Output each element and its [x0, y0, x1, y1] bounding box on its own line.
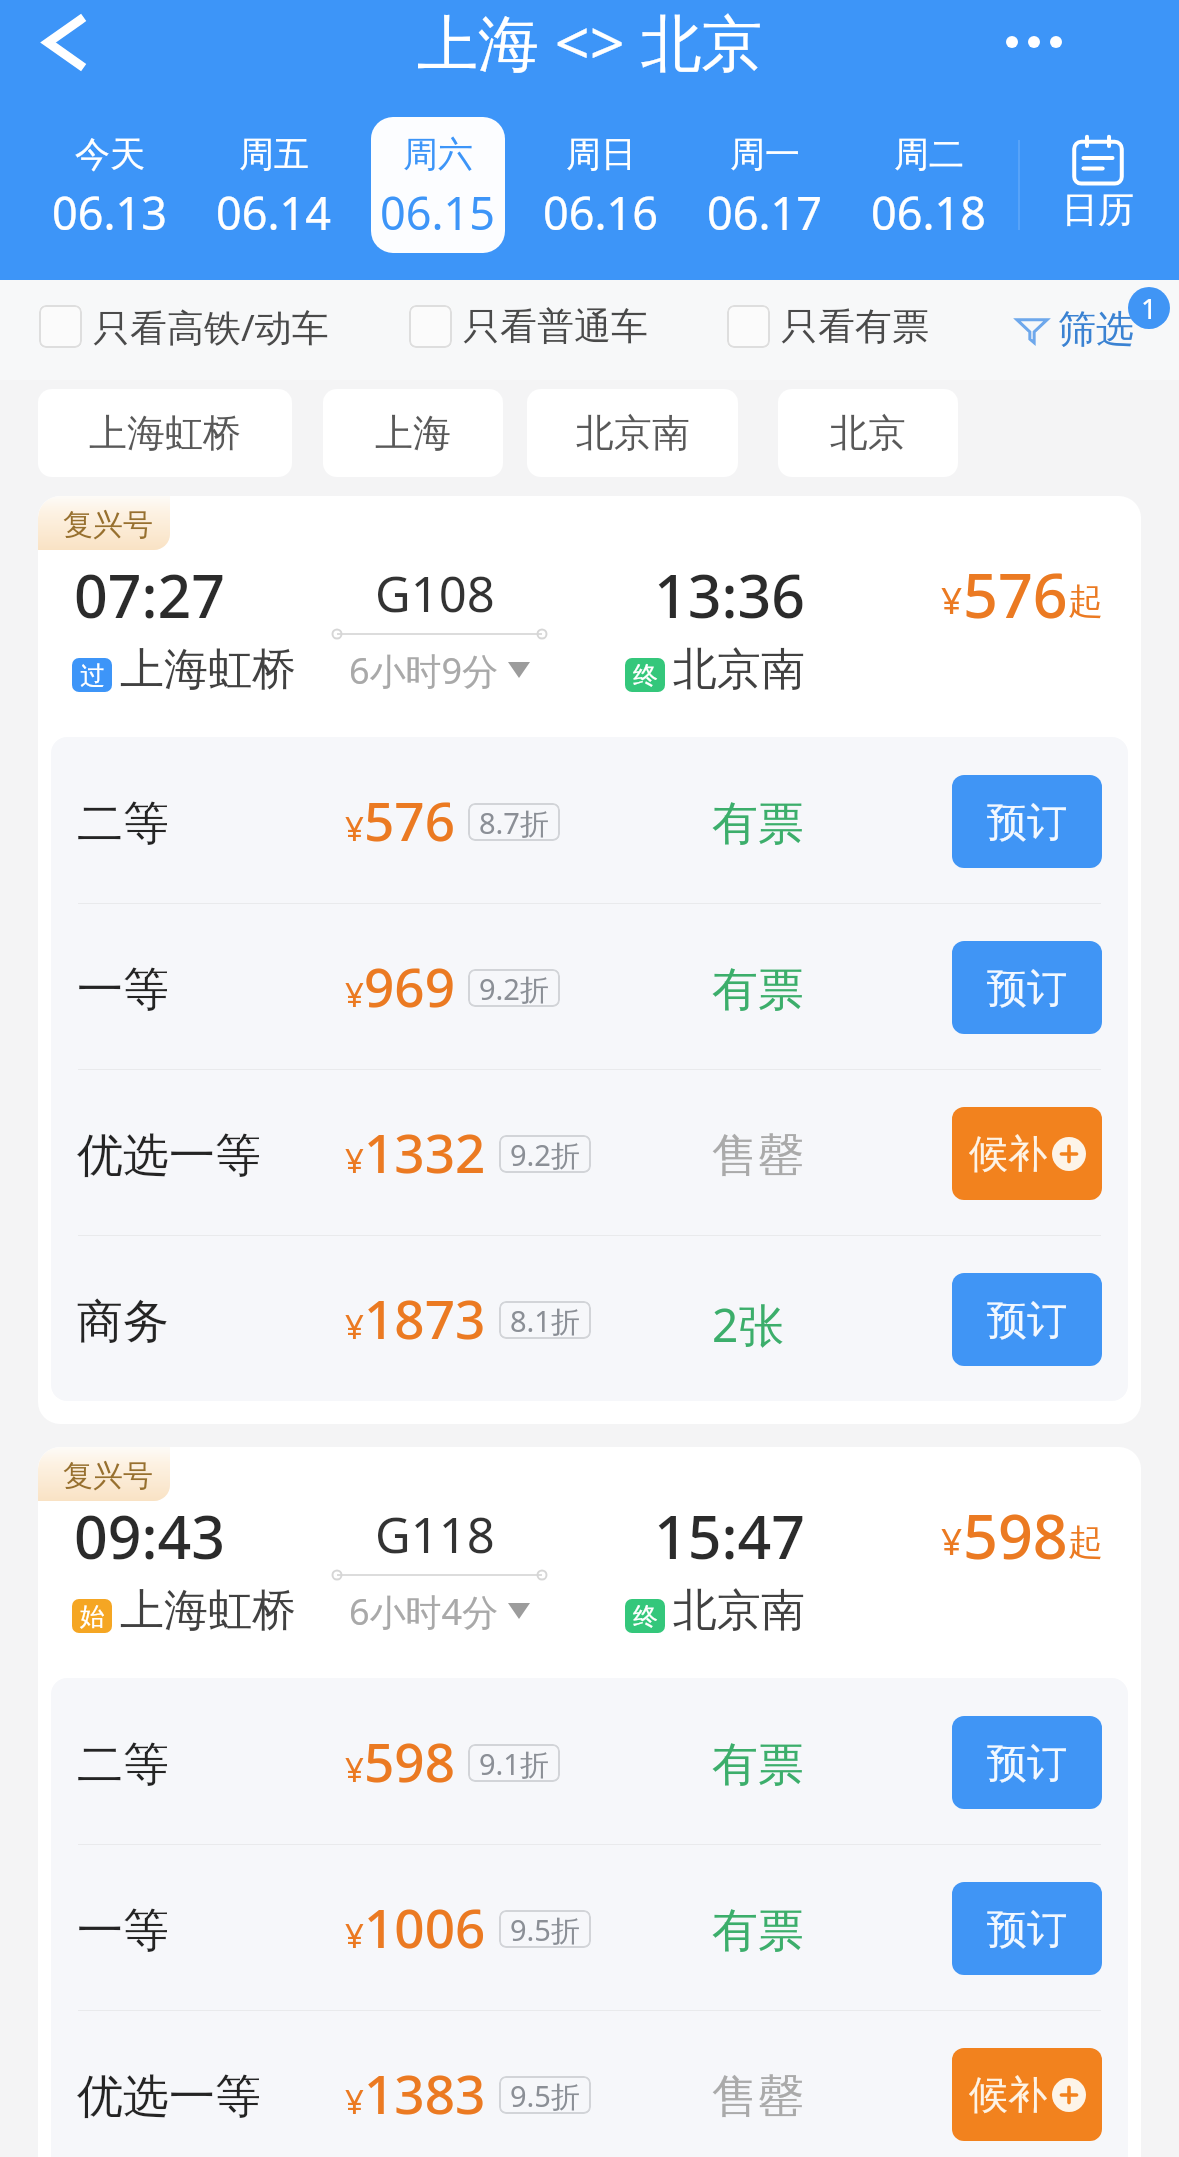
staticText: 06.18 [871, 182, 987, 243]
staticText: 1383 [364, 2057, 486, 2129]
staticText: 598 [963, 1494, 1068, 1577]
staticText: 北京 [830, 409, 906, 457]
button[interactable]: 今天 [43, 117, 177, 253]
button[interactable]: More options [990, 0, 1078, 88]
staticText: 候补 [969, 2070, 1047, 2119]
staticText: 过 [80, 660, 105, 691]
staticText: ¥ [345, 972, 364, 1017]
staticText: 06.13 [52, 182, 168, 243]
button[interactable]: 预订 [952, 1716, 1102, 1809]
button[interactable]: Back [21, 1, 103, 83]
staticText: G108 [375, 560, 495, 627]
staticText: 优选一等 [77, 2068, 261, 2126]
staticText: 二等 [77, 1736, 169, 1794]
button[interactable]: 预订 [952, 775, 1102, 868]
button[interactable]: 周一 [698, 117, 832, 253]
staticText: 终 [633, 1601, 658, 1632]
staticText: 复兴号 [63, 1457, 153, 1495]
staticText: 复兴号 [63, 506, 153, 544]
staticText: 上海虹桥 [89, 409, 241, 457]
staticText: 北京南 [576, 409, 690, 457]
button[interactable]: 周五 [207, 117, 341, 253]
staticText: 上海虹桥 [120, 1583, 296, 1638]
staticText: 09:43 [74, 1496, 226, 1576]
staticText: ¥ [941, 574, 963, 624]
button[interactable]: 周六 [371, 117, 505, 253]
staticText: 售罄 [712, 1127, 804, 1185]
button[interactable]: 筛选 [1014, 293, 1174, 367]
staticText: 日历 [1062, 187, 1134, 232]
staticText: ¥ [345, 806, 364, 851]
staticText: 9.5折 [510, 2076, 580, 2114]
staticText: 预订 [987, 797, 1067, 847]
staticText: 今天 [75, 132, 145, 176]
staticText: 预订 [987, 1295, 1067, 1345]
button[interactable]: 复兴号 [38, 1447, 1141, 2157]
button[interactable]: 只看高铁/动车 [39, 294, 329, 358]
staticText: 9.5折 [510, 1910, 580, 1948]
button[interactable]: 周日 [534, 117, 668, 253]
button[interactable]: 复兴号 [38, 496, 1141, 1424]
staticText: 预订 [987, 1904, 1067, 1954]
staticText: 1006 [364, 1891, 486, 1963]
staticText: ¥ [345, 1304, 364, 1349]
staticText: 一等 [77, 1902, 169, 1960]
staticText: 上海 [375, 409, 451, 457]
staticText: 有票 [712, 1736, 804, 1794]
staticText: 周日 [566, 132, 636, 176]
staticText: G118 [375, 1501, 495, 1568]
staticText: 只看高铁/动车 [93, 301, 329, 352]
staticText: 上海虹桥 [120, 642, 296, 697]
staticText: 06.14 [216, 182, 332, 243]
button[interactable]: 只看普通车 [409, 294, 648, 358]
staticText: 06.17 [707, 182, 823, 243]
staticText: 起 [1068, 579, 1103, 623]
staticText: 9.2折 [479, 969, 549, 1007]
staticText: 15:47 [654, 1496, 806, 1576]
button[interactable]: 上海虹桥 [38, 389, 292, 477]
staticText: 售罄 [712, 2068, 804, 2126]
button[interactable]: 上海 [323, 389, 503, 477]
staticText: 598 [364, 1725, 455, 1797]
staticText: 只看普通车 [463, 303, 648, 350]
staticText: 8.7折 [479, 803, 549, 841]
staticText: 6小时9分 [349, 646, 499, 695]
staticText: 终 [633, 660, 658, 691]
staticText: 周五 [239, 132, 309, 176]
button[interactable]: 预订 [952, 1882, 1102, 1975]
staticText: 起 [1068, 1520, 1103, 1564]
staticText: 有票 [712, 961, 804, 1019]
staticText: 一等 [77, 961, 169, 1019]
staticText: 576 [364, 784, 455, 856]
button[interactable]: 预订 [952, 1273, 1102, 1366]
staticText: 筛选 [1058, 305, 1134, 353]
staticText: 商务 [77, 1293, 169, 1351]
staticText: 有票 [712, 795, 804, 853]
button[interactable]: 只看有票 [727, 294, 929, 358]
button[interactable]: 候补 [952, 1107, 1102, 1200]
staticText: 候补 [969, 1129, 1047, 1178]
button[interactable]: 候补 [952, 2048, 1102, 2141]
button[interactable]: 预订 [952, 941, 1102, 1034]
button[interactable]: Calendar [1030, 121, 1165, 246]
staticText: 9.1折 [479, 1744, 549, 1782]
button[interactable]: 北京南 [527, 389, 738, 477]
button[interactable]: 周二 [862, 117, 996, 253]
staticText: 上海 <> 北京 [417, 0, 763, 83]
staticText: 13:36 [654, 555, 806, 635]
staticText: 始 [80, 1601, 105, 1632]
staticText: 969 [364, 950, 455, 1022]
staticText: 有票 [712, 1902, 804, 1960]
staticText: 预订 [987, 1738, 1067, 1788]
staticText: 6小时4分 [349, 1587, 499, 1636]
staticText: ¥ [941, 1515, 963, 1565]
staticText: 1 [1141, 289, 1158, 327]
staticText: 1332 [364, 1116, 486, 1188]
button[interactable]: 北京 [778, 389, 958, 477]
staticText: 优选一等 [77, 1127, 261, 1185]
staticText: 周一 [730, 132, 800, 176]
staticText: 2张 [712, 1293, 785, 1356]
staticText: 二等 [77, 795, 169, 853]
staticText: 1873 [364, 1282, 486, 1354]
staticText: 07:27 [74, 555, 226, 635]
